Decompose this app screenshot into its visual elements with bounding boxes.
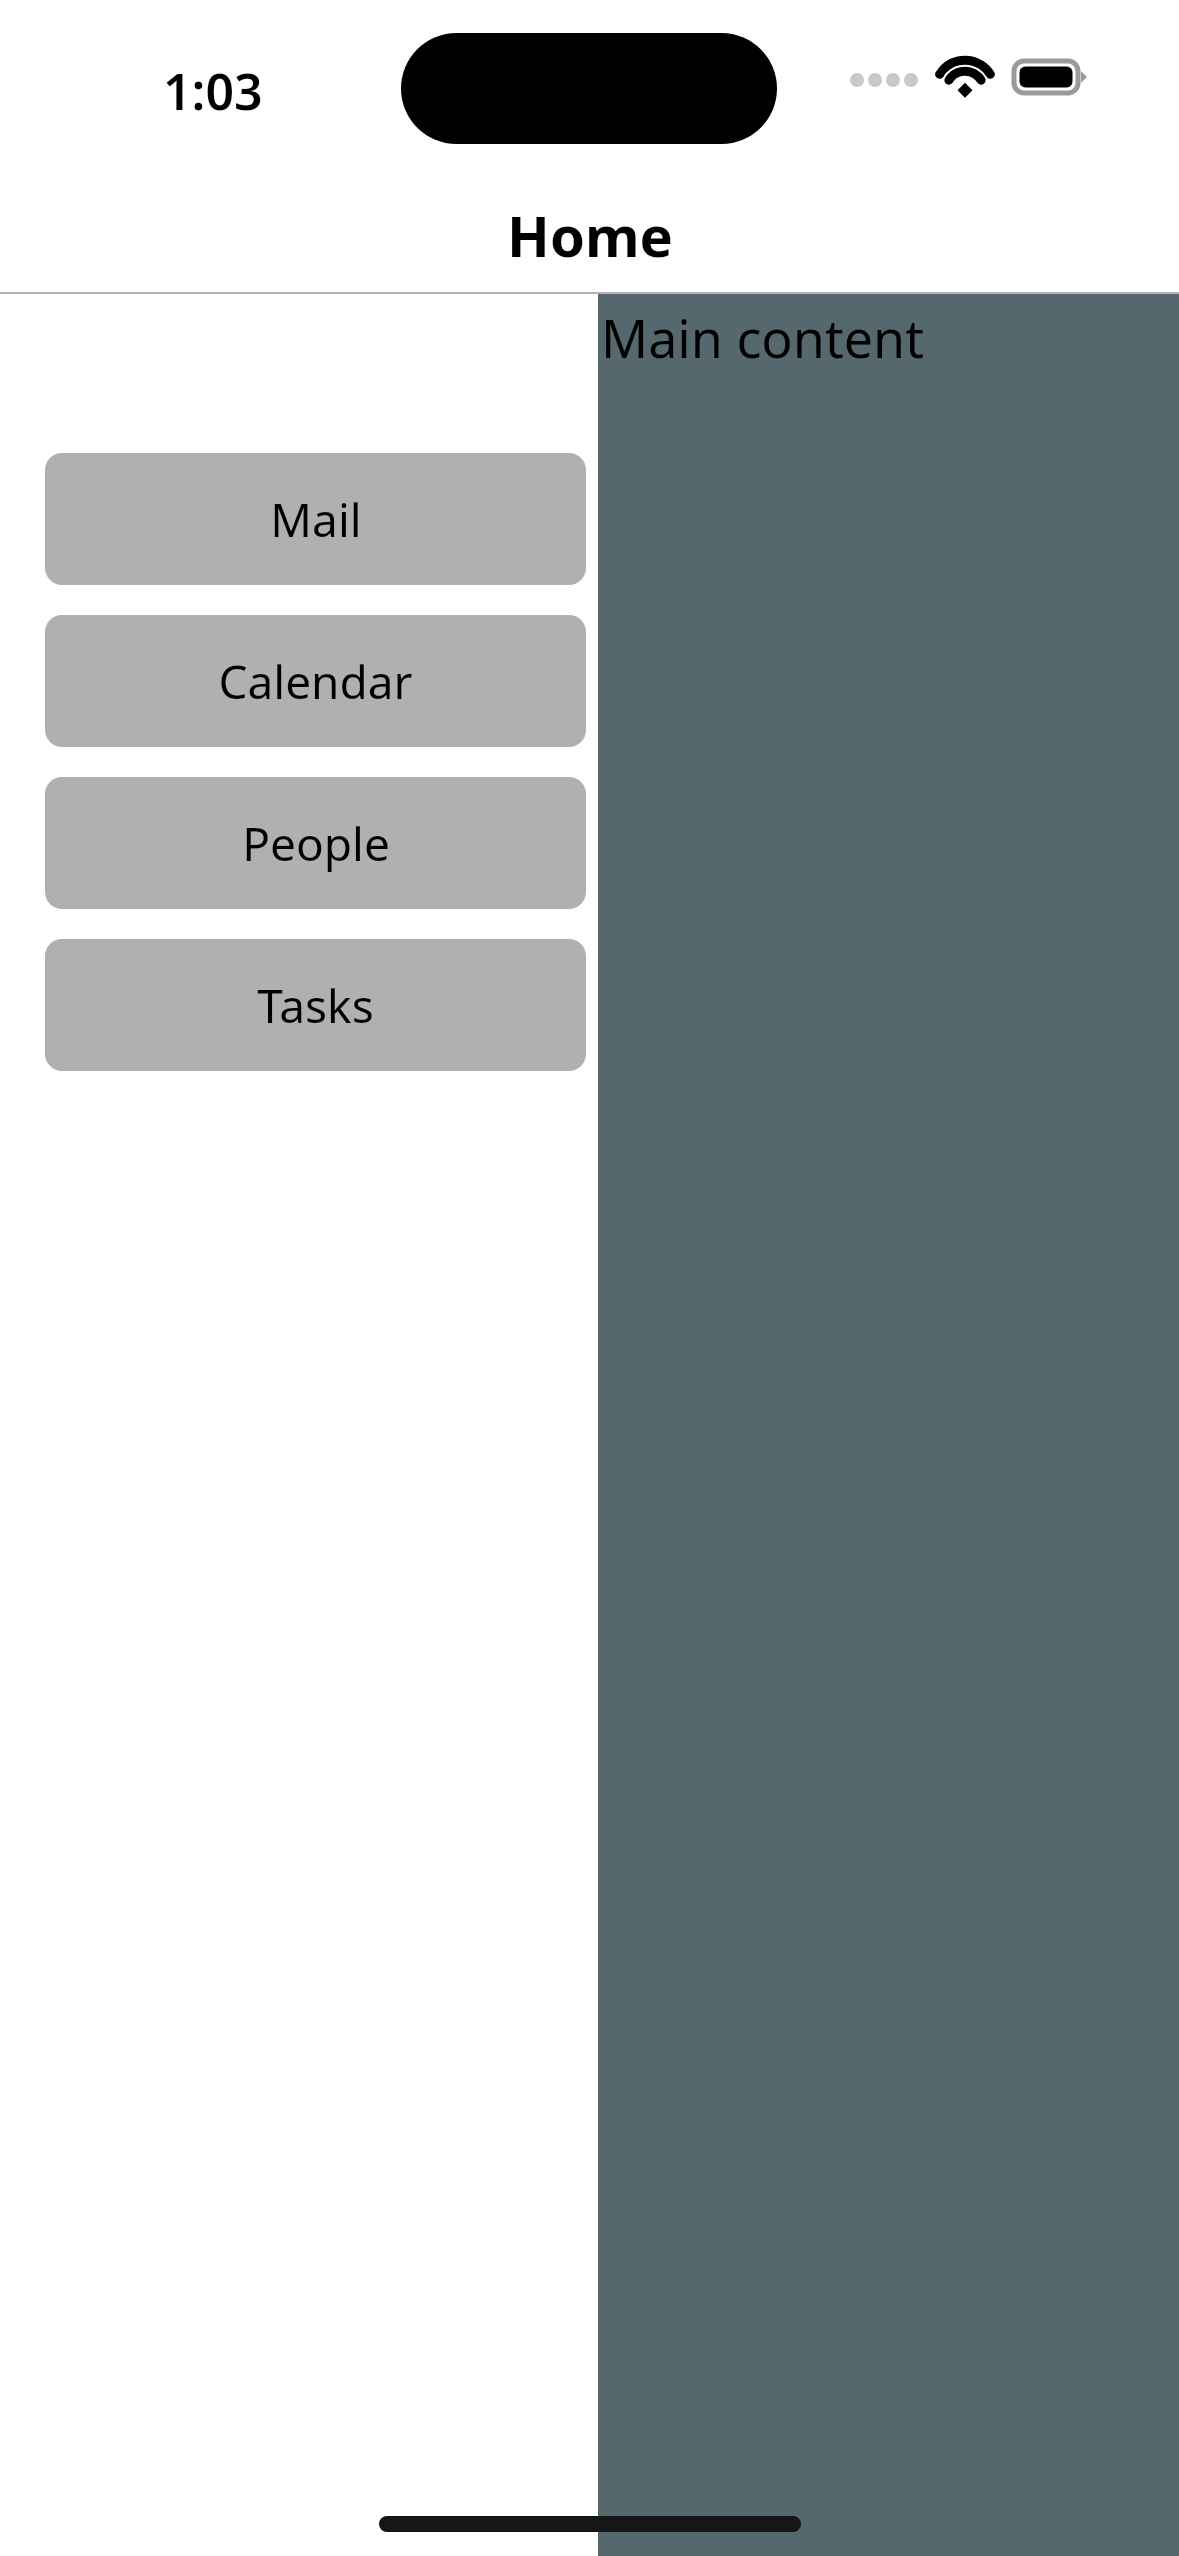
button[interactable]: Calendar <box>45 615 586 747</box>
button[interactable]: Mail <box>45 453 586 585</box>
staticText: Calendar <box>218 650 413 713</box>
staticText: Main content <box>601 302 924 373</box>
staticText: Mail <box>270 488 362 551</box>
staticText: 1:03 <box>163 57 263 125</box>
button[interactable]: Tasks <box>45 939 586 1071</box>
staticText: Tasks <box>257 974 374 1037</box>
button[interactable]: People <box>45 777 586 909</box>
staticText: People <box>242 812 390 875</box>
staticText: Home <box>507 197 673 273</box>
